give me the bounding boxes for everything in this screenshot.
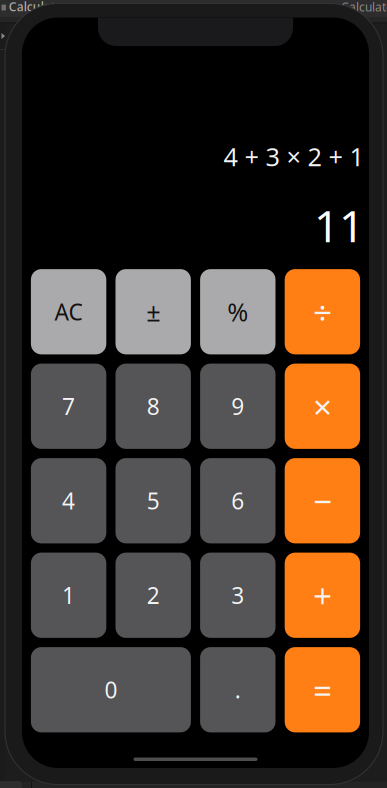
button[interactable]: ± bbox=[115, 269, 191, 354]
staticText: ÷ bbox=[313, 290, 332, 334]
staticText: ± bbox=[146, 295, 160, 328]
staticText: Calculator bbox=[9, 0, 68, 14]
button[interactable]: % bbox=[200, 269, 275, 354]
button[interactable]: 1 bbox=[31, 553, 106, 638]
button[interactable]: AC bbox=[31, 269, 106, 354]
staticText: % bbox=[227, 295, 248, 328]
button[interactable]: 7 bbox=[31, 364, 106, 449]
staticText: 9 bbox=[231, 391, 244, 421]
button[interactable]: = bbox=[285, 647, 360, 732]
staticText: 3 bbox=[231, 580, 244, 610]
staticText: 6 bbox=[231, 486, 244, 516]
staticText: Calculator bbox=[341, 0, 387, 15]
staticText: 8 bbox=[147, 391, 160, 421]
staticText: AC bbox=[55, 297, 83, 327]
button[interactable]: + bbox=[285, 553, 360, 638]
staticText: 1 bbox=[62, 580, 75, 610]
button[interactable]: . bbox=[200, 647, 275, 732]
staticText: − bbox=[313, 479, 332, 523]
staticText: 7 bbox=[62, 391, 75, 421]
button[interactable]: − bbox=[285, 458, 360, 543]
staticText: 2 bbox=[147, 580, 160, 610]
staticText: 0 bbox=[104, 675, 117, 705]
staticText: 11 bbox=[314, 196, 364, 254]
staticText: × bbox=[313, 384, 332, 428]
button[interactable]: ÷ bbox=[285, 269, 360, 354]
button[interactable]: 3 bbox=[200, 553, 275, 638]
button[interactable]: × bbox=[285, 364, 360, 449]
button[interactable]: 2 bbox=[115, 553, 191, 638]
button[interactable]: 0 bbox=[31, 647, 191, 732]
button[interactable]: 4 bbox=[31, 458, 106, 543]
button[interactable]: 8 bbox=[115, 364, 191, 449]
staticText: + bbox=[313, 573, 332, 617]
staticText: . bbox=[235, 675, 241, 705]
button[interactable]: 6 bbox=[200, 458, 275, 543]
staticText: 4 bbox=[62, 486, 75, 516]
button[interactable]: 9 bbox=[200, 364, 275, 449]
button[interactable]: 5 bbox=[115, 458, 191, 543]
staticText: 5 bbox=[147, 486, 160, 516]
staticText: 4 + 3 × 2 + 1 bbox=[223, 139, 363, 173]
staticText: = bbox=[313, 668, 332, 712]
